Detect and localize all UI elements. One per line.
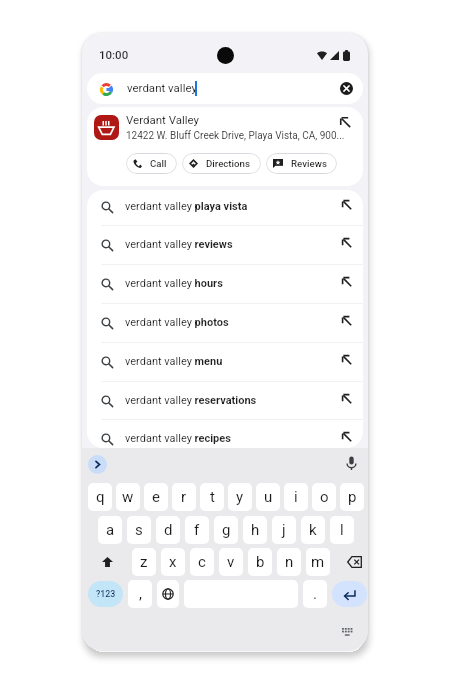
- staticText: v: [227, 553, 235, 571]
- button[interactable]: t: [200, 483, 224, 511]
- staticText: verdant valley reservations: [125, 394, 257, 407]
- button[interactable]: Change language: [157, 580, 179, 608]
- button[interactable]: More suggestions: [88, 455, 107, 474]
- button[interactable]: Hide keyboard: [342, 628, 353, 637]
- staticText: l: [340, 521, 344, 539]
- staticText: x: [169, 553, 177, 571]
- staticText: 10:00: [99, 48, 129, 61]
- staticText: w: [122, 488, 134, 506]
- staticText: verdant valley: [127, 81, 197, 94]
- staticText: Call: [150, 158, 167, 169]
- staticText: z: [140, 553, 148, 571]
- staticText: t: [210, 488, 215, 506]
- button[interactable]: verdant valley: [87, 73, 363, 104]
- button[interactable]: b: [248, 548, 272, 576]
- button[interactable]: q: [88, 483, 112, 511]
- staticText: e: [152, 488, 160, 506]
- button[interactable]: ?123: [88, 581, 123, 607]
- button[interactable]: Enter: [332, 581, 367, 607]
- staticText: i: [294, 488, 298, 506]
- button[interactable]: f: [185, 516, 209, 544]
- button[interactable]: a: [98, 516, 122, 544]
- button[interactable]: x: [161, 548, 185, 576]
- staticText: a: [106, 521, 115, 539]
- button[interactable]: i: [284, 483, 308, 511]
- staticText: m: [311, 553, 325, 571]
- button[interactable]: verdant valley reviews: [87, 225, 363, 264]
- staticText: k: [309, 521, 317, 539]
- button[interactable]: Backspace: [335, 548, 368, 576]
- staticText: h: [251, 521, 260, 539]
- staticText: p: [348, 488, 357, 506]
- button[interactable]: verdant valley playa vista: [87, 190, 363, 226]
- button[interactable]: e: [144, 483, 168, 511]
- button[interactable]: d: [156, 516, 180, 544]
- button[interactable]: verdant valley hours: [87, 264, 363, 303]
- staticText: s: [135, 521, 143, 539]
- staticText: r: [181, 488, 187, 506]
- staticText: c: [198, 553, 206, 571]
- button[interactable]: verdant valley recipes: [87, 419, 363, 448]
- button[interactable]: n: [277, 548, 301, 576]
- button[interactable]: Verdant Valley: [87, 107, 363, 186]
- staticText: u: [264, 488, 273, 506]
- staticText: d: [164, 521, 173, 539]
- staticText: o: [320, 488, 329, 506]
- staticText: Reviews: [291, 158, 327, 169]
- button[interactable]: p: [340, 483, 364, 511]
- button[interactable]: g: [214, 516, 238, 544]
- staticText: Verdant Valley: [126, 113, 200, 126]
- staticText: ?123: [96, 589, 116, 599]
- button[interactable]: Call: [126, 153, 177, 174]
- button[interactable]: s: [127, 516, 151, 544]
- button[interactable]: u: [256, 483, 280, 511]
- staticText: verdant valley menu: [125, 355, 223, 368]
- staticText: ,: [139, 585, 142, 603]
- staticText: verdant valley photos: [125, 316, 229, 329]
- staticText: j: [282, 521, 286, 539]
- button[interactable]: Directions: [182, 153, 261, 174]
- button[interactable]: .: [303, 580, 327, 608]
- button[interactable]: ,: [128, 580, 152, 608]
- button[interactable]: k: [301, 516, 325, 544]
- button[interactable]: Shift: [88, 548, 127, 576]
- button[interactable]: h: [243, 516, 267, 544]
- staticText: 12422 W. Bluff Creek Drive, Playa Vista,…: [126, 130, 345, 142]
- button[interactable]: o: [312, 483, 336, 511]
- staticText: verdant valley recipes: [125, 432, 231, 445]
- button[interactable]: m: [306, 548, 330, 576]
- staticText: verdant valley playa vista: [125, 200, 248, 213]
- staticText: .: [313, 585, 317, 603]
- button[interactable]: j: [272, 516, 296, 544]
- button[interactable]: verdant valley menu: [87, 342, 363, 381]
- staticText: n: [285, 553, 294, 571]
- button[interactable]: v: [219, 548, 243, 576]
- button[interactable]: c: [190, 548, 214, 576]
- staticText: verdant valley reviews: [125, 238, 233, 251]
- button[interactable]: Clear search: [340, 82, 353, 95]
- staticText: b: [256, 553, 265, 571]
- button[interactable]: Reviews: [266, 153, 337, 174]
- button[interactable]: y: [228, 483, 252, 511]
- button[interactable]: verdant valley reservations: [87, 381, 363, 420]
- button[interactable]: z: [132, 548, 156, 576]
- staticText: verdant valley hours: [125, 277, 223, 290]
- button[interactable]: r: [172, 483, 196, 511]
- staticText: f: [194, 521, 200, 539]
- staticText: q: [96, 488, 105, 506]
- button[interactable]: w: [116, 483, 140, 511]
- staticText: Directions: [206, 158, 250, 169]
- staticText: y: [236, 488, 244, 506]
- button[interactable]: verdant valley photos: [87, 303, 363, 342]
- staticText: g: [222, 521, 231, 539]
- button[interactable]: Voice search: [346, 456, 357, 471]
- button[interactable]: l: [330, 516, 354, 544]
